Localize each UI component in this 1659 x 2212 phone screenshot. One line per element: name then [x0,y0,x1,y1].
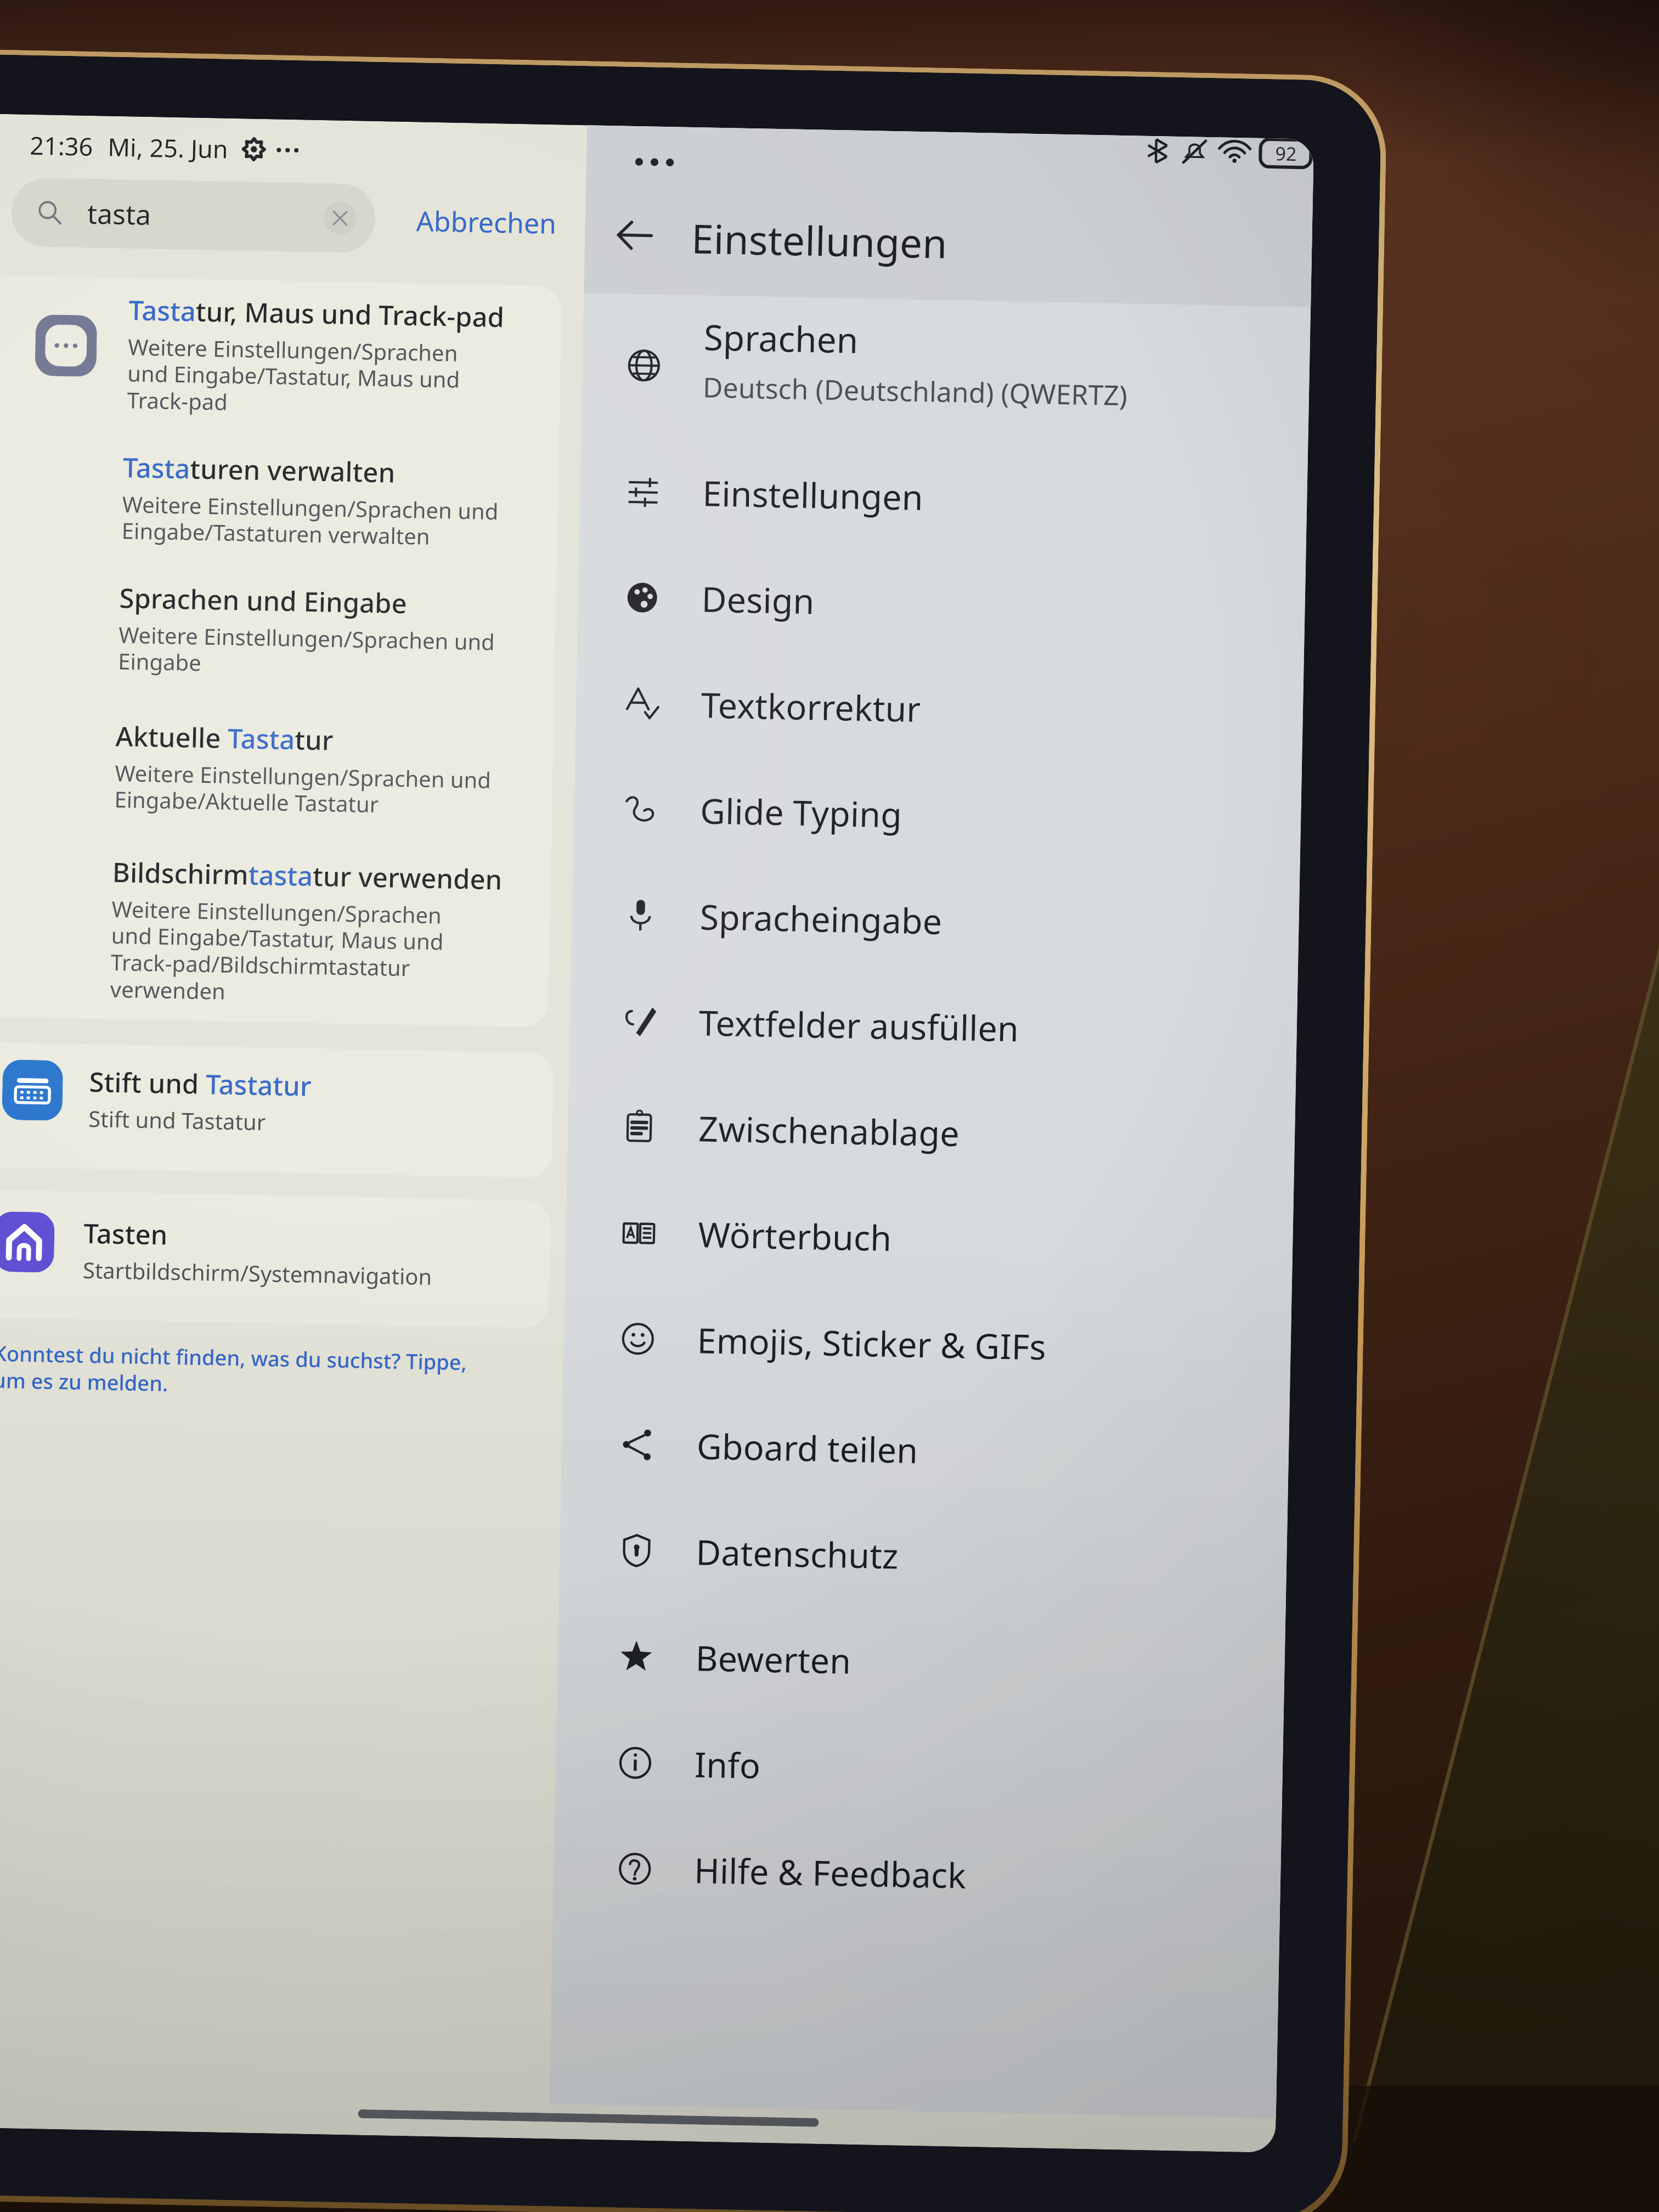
staticText: Bildschirmtastatur verwenden [112,854,503,898]
button[interactable]: Emojis, Sticker & GIFs [575,1284,1292,1405]
staticText: Glide Typing [700,787,903,838]
staticText: Design [701,575,815,624]
button[interactable]: Tastatur, Maus und Track-pad [127,291,546,423]
staticText: Hilfe & Feedback [694,1846,967,1899]
staticText: Wörterbuch [698,1211,892,1261]
button[interactable]: Suche löschen [323,201,357,235]
staticText: Einstellungen [691,211,948,270]
staticText: Tastaturen verwalten [123,449,396,491]
button[interactable]: Sprachen und Eingabe [118,579,537,684]
staticText: Konntest du nicht finden, was du suchst?… [0,1339,498,1404]
button[interactable] [0,1041,554,1178]
button[interactable]: tasta [11,177,376,253]
staticText: Stift und Tastatur [89,1063,312,1104]
staticText: Datenschutz [695,1528,899,1579]
staticText: Weitere Einstellungen/Sprachen und Einga… [121,489,523,553]
staticText: 92 [1275,141,1297,166]
button[interactable]: Hilfe & Feedback [572,1814,1282,1934]
button[interactable]: Weitere Optionen [276,138,299,162]
button[interactable]: Menü [634,141,675,183]
staticText: Weitere Einstellungen/Sprachen und Einga… [110,894,466,1011]
staticText: Weitere Einstellungen/Sprachen und Einga… [114,758,516,822]
button[interactable]: Einstellungen [242,138,265,161]
staticText: Startbildschirm/Systemnavigation [83,1255,433,1291]
button[interactable]: Stift und Tastatur [88,1063,312,1137]
staticText: Aktuelle Tastatur [115,718,334,758]
button[interactable]: Abbrechen [408,194,565,250]
button[interactable]: Datenschutz [574,1496,1288,1616]
button[interactable]: Spracheingabe [578,860,1300,981]
staticText: Tastatur, Maus und Track-pad [128,291,505,335]
staticText: Info [694,1740,761,1789]
button[interactable]: Textkorrektur [579,649,1304,769]
staticText: Deutsch (Deutschland) (QWERTZ) [702,368,1128,414]
button[interactable]: Aktuelle Tastatur [114,718,533,822]
button[interactable]: Stift und Tastatur [2,1059,63,1121]
staticText: 21:36 [30,128,94,163]
button[interactable]: Tastaturen verwalten [121,449,540,553]
button[interactable]: Design [580,543,1306,663]
staticText: Einstellungen [702,469,924,521]
staticText: Tasten [83,1215,168,1253]
button[interactable]: Info [573,1708,1284,1829]
button[interactable] [0,1188,551,1328]
button[interactable]: Tasten [0,1211,55,1273]
staticText: tasta [87,195,152,233]
button[interactable]: Sprachen [582,311,1310,431]
staticText: Sprachen und Eingabe [119,579,408,622]
button[interactable]: Zwischenablage [577,1072,1296,1193]
button[interactable] [0,274,562,1028]
staticText: Spracheingabe [699,893,943,945]
staticText: Sprachen [703,313,859,364]
button[interactable]: Glide Typing [579,754,1302,875]
staticText: Textfelder ausfüllen [698,999,1020,1052]
staticText: Zwischenablage [698,1105,960,1157]
button[interactable]: Bewerten [574,1602,1286,1722]
button[interactable]: Bildschirmtastatur verwenden [110,854,530,1012]
button[interactable]: Einstellungen [691,211,948,270]
staticText: Gboard teilen [696,1422,919,1474]
staticText: Stift und Tastatur [88,1103,266,1136]
button[interactable]: Zurück [608,208,661,262]
staticText: Mi, 25. Jun [107,130,229,165]
staticText: Abbrechen [416,202,557,242]
button[interactable]: Wörterbuch [576,1178,1294,1299]
staticText: Weitere Einstellungen/Sprachen und Einga… [127,331,482,422]
staticText: Weitere Einstellungen/Sprachen und Einga… [118,619,519,684]
button[interactable]: Textfelder ausfüllen [577,966,1298,1087]
staticText: Bewerten [695,1634,852,1684]
staticText: Emojis, Sticker & GIFs [697,1316,1046,1370]
button[interactable]: Gboard teilen [575,1390,1290,1510]
button[interactable]: Einstellungen [581,437,1308,558]
staticText: Textkorrektur [701,681,922,732]
button[interactable]: Tasten [83,1215,433,1291]
